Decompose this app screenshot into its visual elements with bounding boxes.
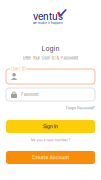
button[interactable]: Forgot Password? <box>66 106 95 110</box>
staticText: Enter Your User ID & Password <box>22 55 78 60</box>
staticText: we make it happen <box>33 21 63 25</box>
staticText: ventus <box>33 11 63 22</box>
staticText: Password <box>21 92 39 97</box>
staticText: Create Account <box>31 155 69 160</box>
button[interactable]: Sign In <box>6 120 95 133</box>
staticText: Sign In <box>43 123 58 129</box>
staticText: Are you a new member ? <box>30 138 70 142</box>
staticText: User ID <box>11 66 26 72</box>
button[interactable]: Create Account <box>6 151 95 164</box>
staticText: Login <box>41 44 59 53</box>
staticText: Forgot Password? <box>66 106 95 110</box>
